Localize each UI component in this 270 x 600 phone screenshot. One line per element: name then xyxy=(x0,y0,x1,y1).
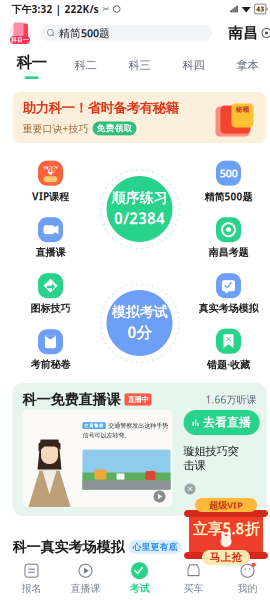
staticText: 科一免费直播课 xyxy=(22,391,120,408)
staticText: 500 xyxy=(219,165,237,181)
staticText: 0分 xyxy=(127,322,151,343)
staticText: 下午3:32 | 222K/s xyxy=(11,2,98,16)
staticText: VIP xyxy=(45,165,56,174)
staticText: 错题·收藏 xyxy=(207,358,250,371)
staticText: 马上抢 xyxy=(209,551,242,564)
staticText: 交通警察 xyxy=(84,423,104,428)
staticText: 直播中 xyxy=(127,395,148,404)
button[interactable]: 精简500题 xyxy=(40,25,212,41)
button[interactable]: 南昌 xyxy=(228,24,270,42)
staticText: 科四 xyxy=(182,58,204,72)
staticText: 科一真实考场模拟 xyxy=(12,538,124,556)
button[interactable]: 500 xyxy=(184,162,270,202)
staticText: 直播课 xyxy=(70,582,100,595)
staticText: 南昌考题 xyxy=(208,246,248,259)
staticText: 报名 xyxy=(21,582,41,595)
button[interactable]: 模拟考试 xyxy=(98,282,180,364)
button[interactable]: 顺序练习 xyxy=(98,168,180,250)
button[interactable]: 科一免费直播课 xyxy=(12,383,266,516)
staticText: 拿本 xyxy=(236,58,258,72)
button[interactable]: 考前秘卷 xyxy=(6,330,94,370)
button[interactable]: 图标技巧 xyxy=(6,274,94,314)
button[interactable]: 我的 xyxy=(220,559,270,599)
staticText: 秘籍 xyxy=(235,105,249,114)
staticText: ✂ xyxy=(102,4,109,14)
staticText: 43 xyxy=(256,4,264,14)
staticText: 图标技巧 xyxy=(30,302,70,315)
staticText: 科目一 xyxy=(11,36,29,44)
staticText: 考试 xyxy=(129,582,149,595)
staticText: 交通警察发出这种手势 xyxy=(108,422,168,429)
staticText: 模拟考试 xyxy=(111,303,167,321)
button[interactable]: 科二 xyxy=(58,48,112,83)
staticText: 1.66万听课 xyxy=(205,393,256,406)
button[interactable]: ✕ xyxy=(184,330,270,370)
staticText: 精简500题 xyxy=(59,26,110,40)
button[interactable]: 直播课 xyxy=(58,559,112,599)
staticText: 真实考场模拟 xyxy=(198,302,258,315)
staticText: 立享5.8折 xyxy=(192,518,259,539)
staticText: 超级VIP xyxy=(209,499,243,511)
staticText: 我的 xyxy=(237,582,257,595)
staticText: ✕ xyxy=(225,334,232,344)
button[interactable]: 科四 xyxy=(166,48,220,83)
staticText: 顺序练习 xyxy=(111,189,167,207)
staticText: 买车 xyxy=(183,582,203,595)
staticText: 精简500题 xyxy=(204,190,252,203)
staticText: 考前秘卷 xyxy=(30,358,70,371)
button[interactable]: VIP xyxy=(6,162,94,202)
staticText: 助力科一！省时备考有秘籍 xyxy=(22,100,178,116)
staticText: 去看直播 xyxy=(203,415,251,430)
staticText: 重要口诀+技巧 xyxy=(22,122,88,135)
staticText: 科一 xyxy=(16,53,46,72)
button[interactable]: 拿本 xyxy=(220,48,270,83)
button[interactable]: 真实考场模拟 xyxy=(184,274,270,314)
staticText: 免费领取 xyxy=(96,123,132,134)
staticText: 0/2384 xyxy=(114,208,165,229)
button[interactable]: 科一 xyxy=(4,48,58,83)
staticText: 心里更有底 xyxy=(132,541,177,552)
staticText: 信号可以左转弯。 xyxy=(82,431,130,439)
button[interactable]: 科目一 xyxy=(8,20,32,45)
button[interactable]: 直播课 xyxy=(6,218,94,258)
staticText: 科二 xyxy=(74,58,96,72)
button[interactable]: 助力科一！省时备考有秘籍 xyxy=(12,92,266,143)
staticText: 科三 xyxy=(128,58,150,72)
button[interactable]: 报名 xyxy=(4,559,58,599)
staticText: 南昌 xyxy=(228,24,258,42)
staticText: 直播课 xyxy=(35,246,65,259)
button[interactable]: 考试 xyxy=(112,559,166,599)
button[interactable]: 科三 xyxy=(112,48,166,83)
staticText: VIP课程 xyxy=(32,190,69,203)
button[interactable]: 南昌考题 xyxy=(184,218,270,258)
staticText: ✕ xyxy=(187,485,193,493)
button[interactable]: 买车 xyxy=(166,559,220,599)
staticText: 璇姐技巧突击课 xyxy=(183,444,238,473)
button[interactable]: 超级VIP xyxy=(183,482,269,556)
